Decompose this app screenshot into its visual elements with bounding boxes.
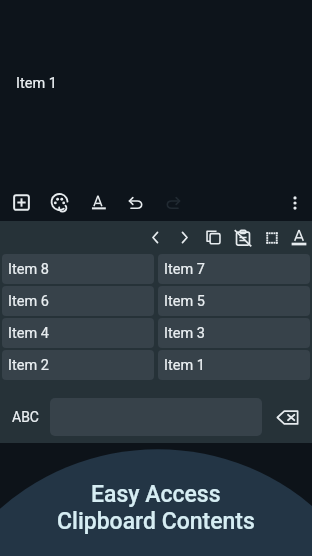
button[interactable]: More options [280,184,310,221]
button[interactable]: Backspace [262,394,312,440]
button[interactable]: Item 7 [158,254,310,284]
staticText: Easy Access [91,481,221,508]
button[interactable]: Paste [228,221,257,254]
button[interactable]: Color [40,184,78,221]
staticText: ABC [12,409,39,425]
button[interactable]: Formatting [286,221,312,254]
button[interactable]: Redo [154,184,192,221]
button[interactable]: Item 3 [158,318,310,348]
staticText: Item 5 [164,293,205,310]
button[interactable]: Text format [78,184,116,221]
button[interactable]: Previous [141,221,170,254]
button[interactable]: Item 1 [158,350,310,380]
staticText: Item 1 [164,357,205,374]
button[interactable]: Item 4 [2,318,154,348]
staticText: Item 2 [8,357,49,374]
staticText: Item 6 [8,293,49,310]
button[interactable]: Next [170,221,199,254]
button[interactable]: Select all [257,221,286,254]
button[interactable]: Item 8 [2,254,154,284]
staticText: Item 3 [164,325,205,342]
button[interactable]: Insert [2,184,40,221]
staticText: Item 1 [16,75,57,92]
staticText: Item 4 [8,325,49,342]
button[interactable]: Item 2 [2,350,154,380]
button[interactable]: Item 5 [158,286,310,316]
staticText: Item 7 [164,261,205,278]
staticText: Item 8 [8,261,49,278]
button[interactable]: Item 6 [2,286,154,316]
staticText: Clipboard Contents [57,508,255,535]
button[interactable]: Copy [199,221,228,254]
button[interactable]: ABC [0,394,50,440]
button[interactable]: Undo [116,184,154,221]
